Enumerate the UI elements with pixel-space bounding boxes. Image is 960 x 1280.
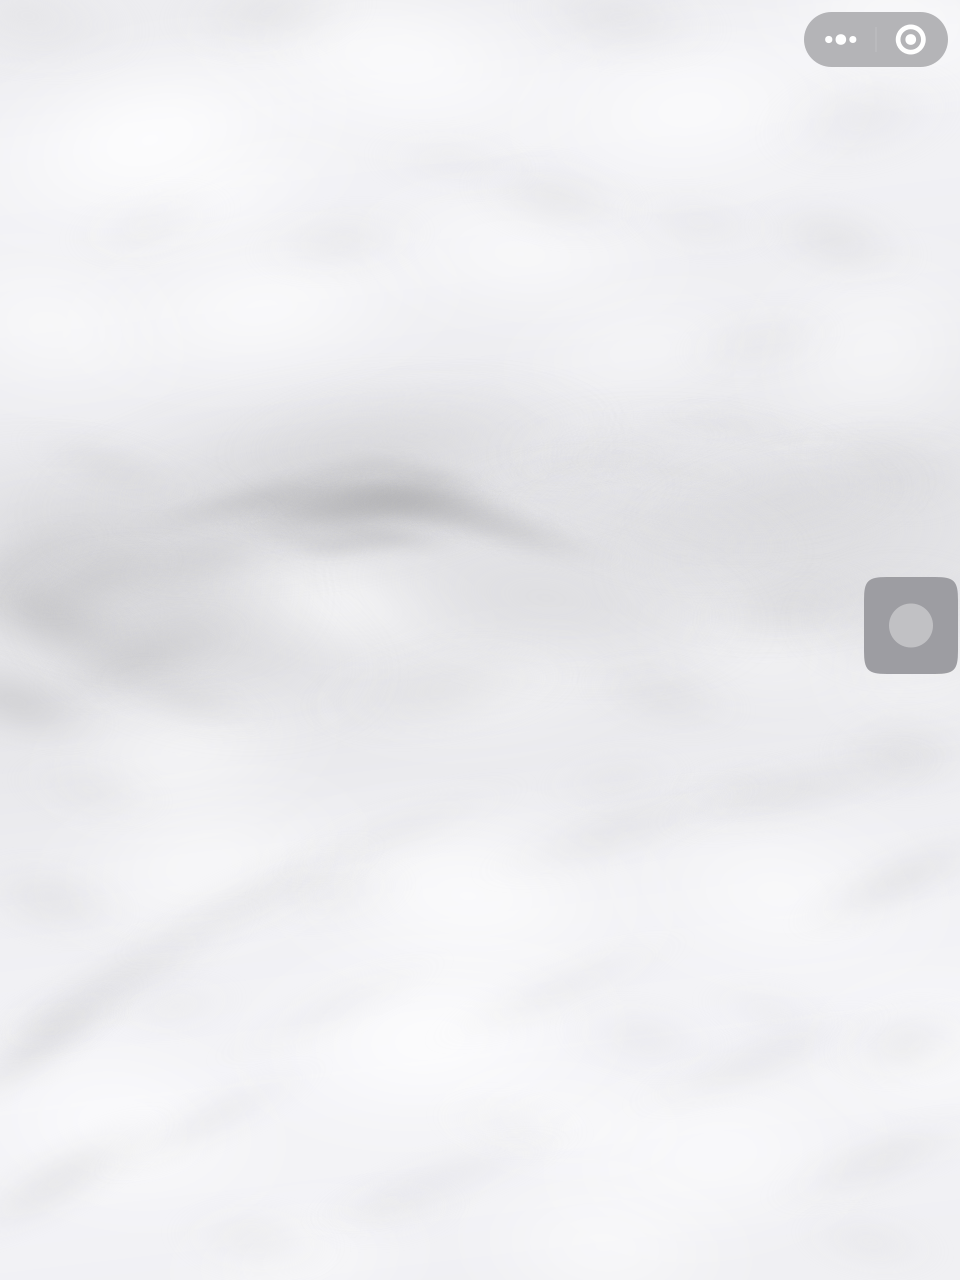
button[interactable]: More options [804, 12, 875, 67]
button[interactable]: Camera mode [864, 577, 958, 674]
button[interactable]: Record [876, 12, 948, 67]
